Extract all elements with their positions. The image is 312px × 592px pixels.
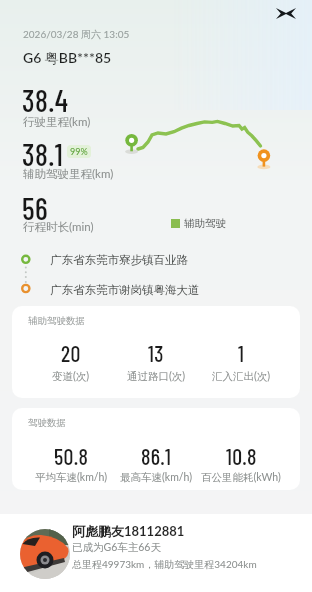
staticText: 行程时长(min) (23, 220, 94, 235)
staticText: 13 (148, 340, 164, 366)
staticText: 通过路口(次) (127, 370, 186, 383)
staticText: 汇入汇出(次) (212, 370, 271, 383)
staticText: 已成为G6车主66天 (72, 541, 161, 554)
staticText: 38.1 (22, 136, 64, 172)
staticText: 辅助驾驶 (184, 217, 226, 230)
button[interactable]: 阿彪鹏友18112881 (0, 514, 312, 592)
staticText: 86.1 (141, 443, 172, 469)
staticText: 辅助驾驶数据 (28, 315, 85, 327)
staticText: 总里程49973km，辅助驾驶里程34204km (72, 558, 257, 571)
staticText: 2026/03/28 周六 13:05 (23, 28, 130, 41)
staticText: 阿彪鹏友18112881 (72, 523, 185, 540)
staticText: 50.8 (54, 443, 89, 469)
staticText: 56 (22, 190, 48, 226)
staticText: 1 (238, 340, 245, 366)
staticText: 变道(次) (52, 370, 90, 383)
staticText: 38.4 (22, 82, 69, 118)
staticText: 广东省东莞市寮步镇百业路 (50, 253, 188, 267)
staticText: 广东省东莞市谢岗镇粤海大道 (50, 283, 200, 297)
staticText: 最高车速(km/h) (120, 471, 192, 484)
staticText: 驾驶数据 (28, 417, 66, 429)
staticText: 99% (70, 146, 88, 157)
staticText: 百公里能耗(kWh) (201, 471, 281, 484)
staticText: 20 (61, 340, 81, 366)
staticText: 辅助驾驶里程(km) (23, 167, 114, 182)
staticText: 10.8 (226, 443, 257, 469)
staticText: 平均车速(km/h) (35, 471, 107, 484)
staticText: 行驶里程(km) (23, 115, 91, 130)
button[interactable]: 驾驶数据 (12, 408, 300, 490)
button[interactable]: 辅助驾驶数据 (12, 306, 300, 398)
staticText: G6 粤BB***85 (23, 49, 112, 67)
